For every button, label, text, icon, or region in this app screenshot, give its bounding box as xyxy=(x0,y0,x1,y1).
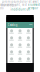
button[interactable] xyxy=(24,42,33,49)
staticText: Catalog xyxy=(8,23,18,27)
button[interactable]: eiusmod tempor xyxy=(28,3,40,10)
button[interactable] xyxy=(7,49,16,56)
staticText: incididunt ut xyxy=(10,8,29,11)
staticText: adipiscing elit, sed do xyxy=(0,3,27,10)
staticText: ••• xyxy=(29,23,32,27)
button[interactable] xyxy=(24,56,33,63)
button[interactable] xyxy=(24,35,33,42)
button[interactable] xyxy=(7,42,16,49)
button[interactable] xyxy=(16,49,24,56)
button[interactable] xyxy=(7,35,16,42)
button[interactable] xyxy=(16,42,24,49)
staticText: eiusmod tempor xyxy=(28,3,40,10)
button[interactable] xyxy=(16,35,24,42)
button[interactable] xyxy=(16,56,24,63)
button[interactable] xyxy=(24,49,33,56)
button[interactable] xyxy=(24,28,33,35)
button[interactable] xyxy=(7,28,16,35)
staticText: Lorem ipsum dolor sit amet consectetur xyxy=(1,0,38,7)
button[interactable] xyxy=(16,28,24,35)
button[interactable] xyxy=(7,56,16,63)
button[interactable]: incididunt ut xyxy=(10,8,29,11)
